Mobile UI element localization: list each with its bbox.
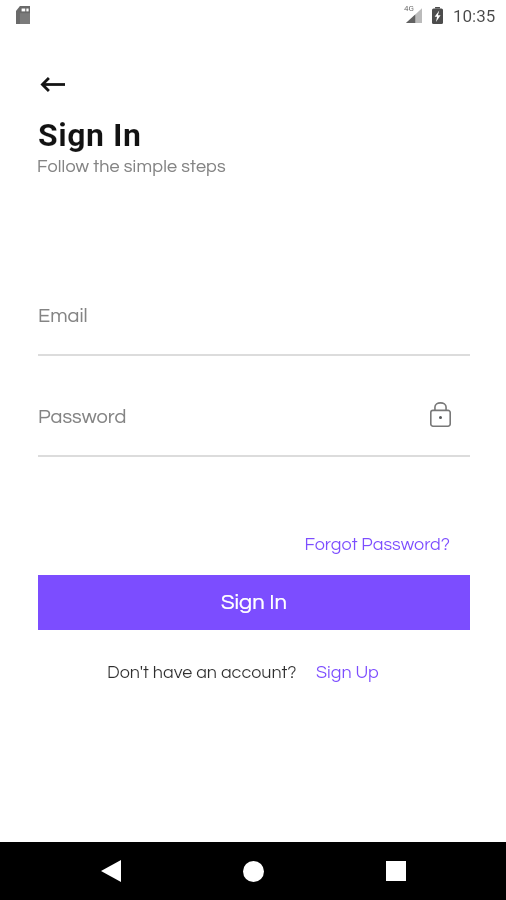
staticText: Email bbox=[38, 306, 88, 327]
button[interactable]: Email bbox=[38, 300, 470, 355]
staticText: Password bbox=[38, 407, 127, 428]
staticText: Forgot Password? bbox=[294, 535, 450, 554]
button[interactable]: Home bbox=[229, 847, 277, 895]
button[interactable]: Password bbox=[38, 401, 470, 456]
staticText: 4G bbox=[404, 4, 414, 13]
button[interactable]: Sign Up bbox=[297, 663, 379, 682]
button[interactable]: Sign In bbox=[38, 575, 470, 630]
button[interactable]: Forgot Password? bbox=[290, 531, 454, 558]
staticText: Follow the simple steps bbox=[37, 157, 226, 176]
button[interactable]: Back bbox=[38, 69, 68, 99]
button[interactable]: Recent apps bbox=[372, 847, 420, 895]
button[interactable]: Toggle password visibility bbox=[422, 395, 459, 432]
staticText: Sign In bbox=[221, 591, 287, 614]
staticText: Sign In bbox=[38, 116, 142, 154]
staticText: Don't have an account? bbox=[107, 663, 297, 682]
staticText: 10:35 bbox=[453, 6, 496, 26]
staticText: Sign Up bbox=[316, 663, 379, 682]
button[interactable]: Back bbox=[87, 847, 135, 895]
